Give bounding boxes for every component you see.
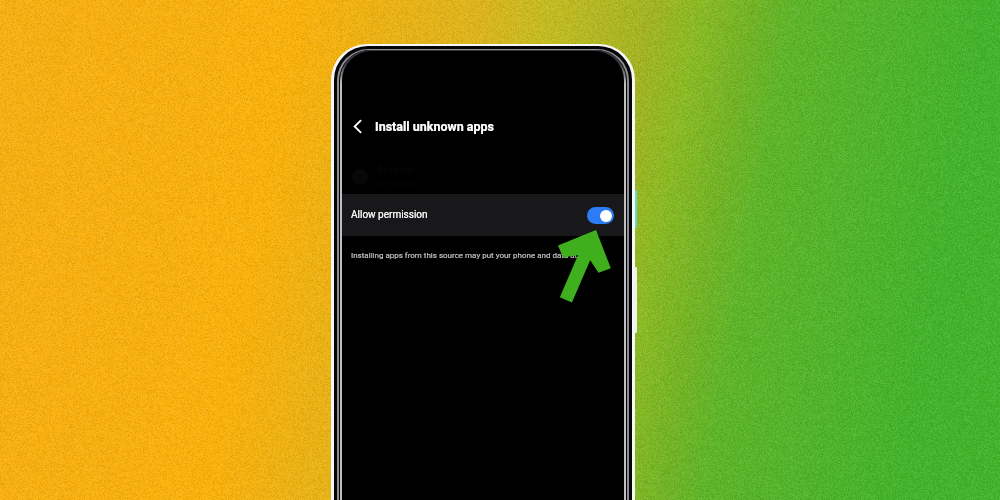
- staticText: Installing apps from this source may put…: [351, 251, 595, 260]
- button[interactable]: Power key: [635, 190, 637, 228]
- button[interactable]: Volume key: [633, 267, 637, 333]
- staticText: Install unknown apps: [375, 119, 495, 134]
- staticText: Allow permission: [351, 209, 428, 221]
- button[interactable]: Allow permission: [342, 194, 624, 236]
- button[interactable]: Back: [345, 114, 369, 138]
- button[interactable]: Browser: [351, 159, 421, 195]
- button[interactable]: Allow permission toggle: [587, 207, 614, 224]
